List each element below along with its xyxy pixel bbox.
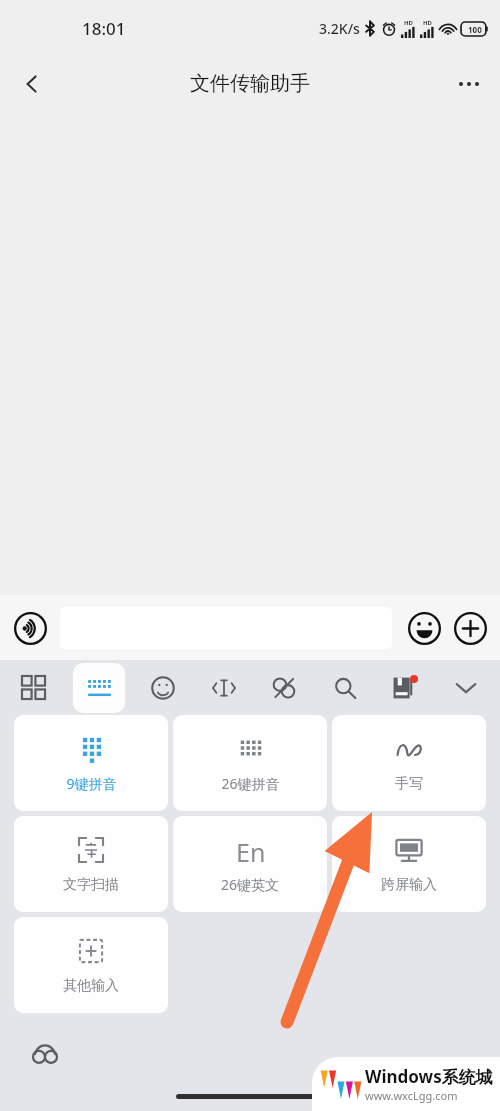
staticText: 9键拼音 (66, 774, 117, 793)
button[interactable]: Keyboard (73, 663, 125, 713)
button[interactable]: Emoji (404, 608, 444, 648)
staticText: 18:01 (82, 17, 126, 40)
button[interactable]: Dictionary (383, 666, 427, 710)
button[interactable]: More options (446, 61, 492, 107)
staticText: 其他输入 (63, 977, 119, 995)
staticText: 文字扫描 (63, 876, 119, 894)
staticText: 3.2K/s (319, 19, 360, 38)
button[interactable]: Text cursor (202, 666, 246, 710)
button[interactable]: 其他输入 (14, 917, 168, 1013)
staticText: 跨屏输入 (381, 876, 437, 894)
button[interactable]: Clipboard link (262, 666, 306, 710)
button[interactable]: Emoji panel (141, 666, 185, 710)
button[interactable]: En (173, 816, 327, 912)
button[interactable]: Input method logo (26, 1035, 64, 1073)
button[interactable]: 手写 (332, 715, 486, 811)
button[interactable]: Search (323, 666, 367, 710)
button[interactable]: Collapse keyboard (444, 666, 488, 710)
staticText: 26键拼音 (221, 774, 280, 793)
staticText: HD (423, 19, 432, 27)
staticText: www.wxcLgg.com (365, 1088, 458, 1103)
staticText: 文件传输助手 (190, 71, 310, 96)
button[interactable]: Voice input (10, 608, 50, 648)
staticText: Windows系统城 (365, 1065, 493, 1088)
button[interactable]: More (450, 608, 490, 648)
staticText: HD (404, 19, 413, 27)
staticText: 100 (468, 24, 482, 35)
staticText: En (236, 835, 266, 869)
staticText: 手写 (395, 775, 423, 793)
button[interactable]: 9键拼音 (14, 715, 168, 811)
button[interactable]: Back (10, 62, 54, 106)
staticText: 26键英文 (221, 875, 280, 894)
button[interactable]: 跨屏输入 (332, 816, 486, 912)
button[interactable]: 文字扫描 (14, 816, 168, 912)
button[interactable]: 26键拼音 (173, 715, 327, 811)
button[interactable]: Apps (12, 666, 56, 710)
